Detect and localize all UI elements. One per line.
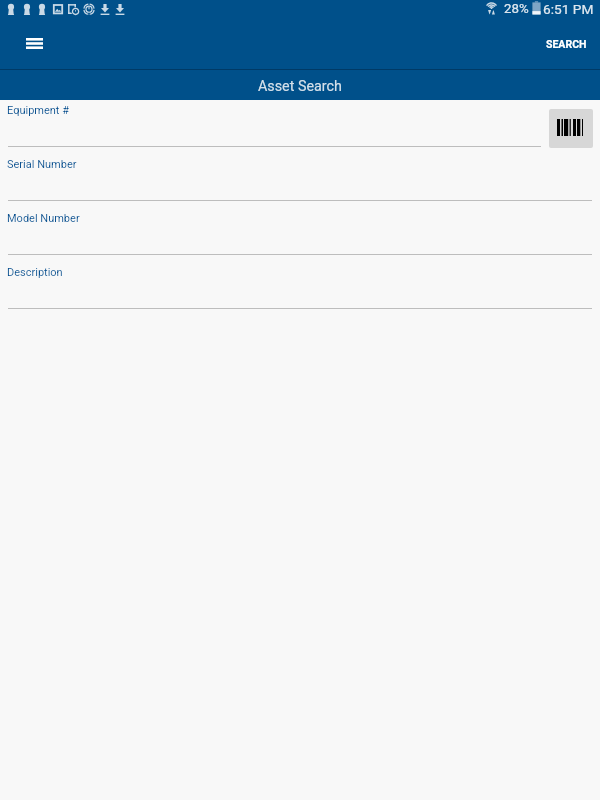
staticText: Serial Number: [7, 158, 77, 171]
button[interactable]: Open navigation drawer: [10, 21, 58, 66]
button[interactable]: SEARCH: [532, 21, 600, 66]
button[interactable]: Scan barcode: [549, 109, 593, 148]
staticText: 6:51 PM: [543, 1, 594, 17]
staticText: Asset Search: [258, 78, 342, 95]
button[interactable]: Serial Number: [0, 154, 600, 208]
staticText: Equipment #: [7, 104, 69, 117]
staticText: Description: [7, 266, 63, 279]
staticText: Model Number: [7, 212, 80, 225]
button[interactable]: Model Number: [0, 208, 600, 262]
staticText: 28%: [504, 1, 529, 17]
button[interactable]: Equipment #: [0, 100, 600, 154]
staticText: SEARCH: [546, 38, 587, 50]
button[interactable]: Description: [0, 262, 600, 316]
